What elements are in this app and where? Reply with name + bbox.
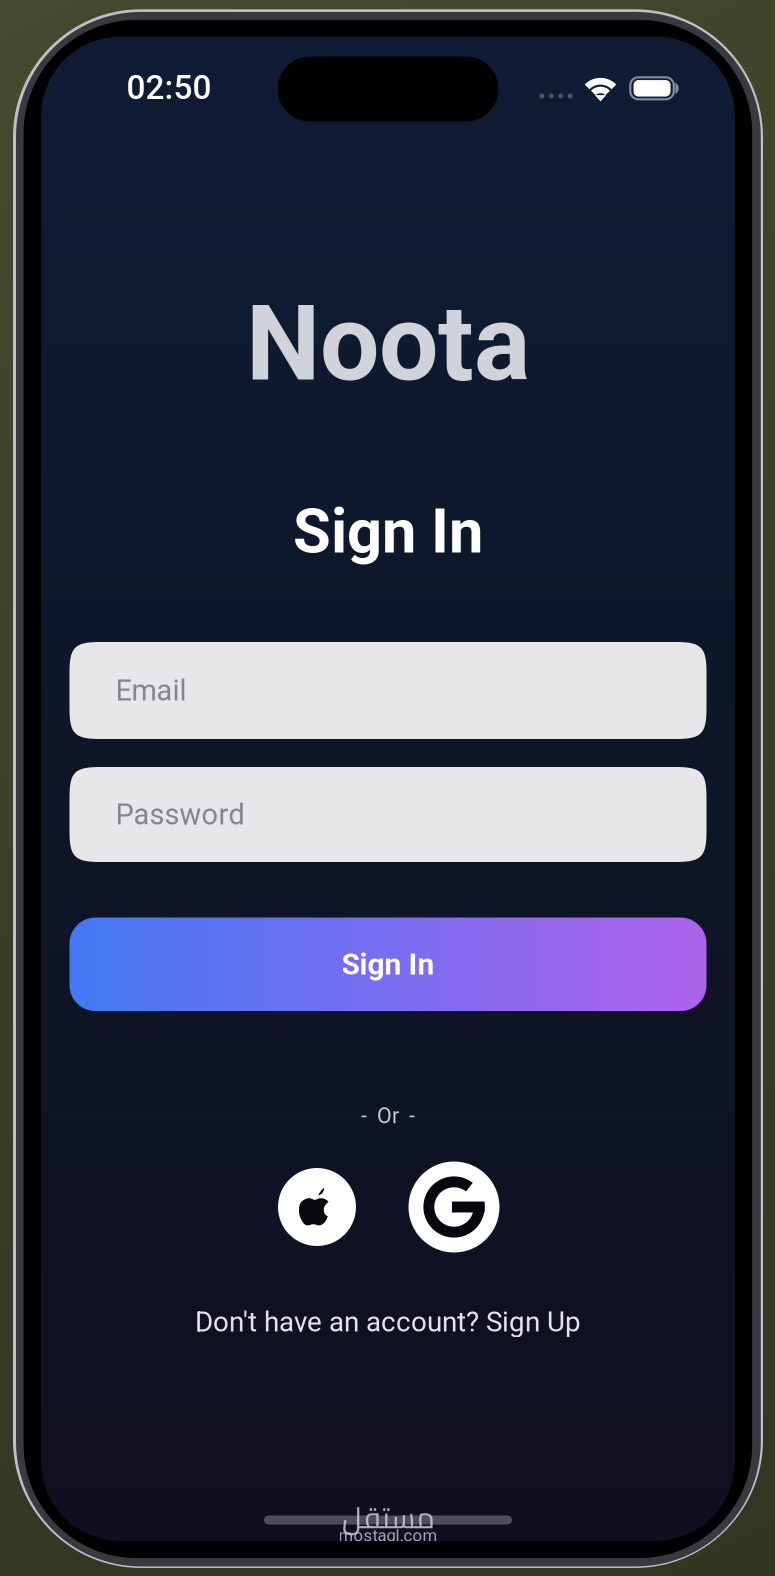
staticText: 02:50 xyxy=(126,68,211,107)
staticText: - Or - xyxy=(361,1103,415,1128)
staticText: مستقل xyxy=(341,1490,434,1545)
staticText: mostaql.com xyxy=(338,1526,437,1545)
button[interactable]: Continue with Apple xyxy=(278,1168,356,1246)
staticText: Don't have an account? Sign Up xyxy=(195,1306,581,1338)
button[interactable]: Email xyxy=(69,642,706,739)
button[interactable]: Don't have an account? Sign Up xyxy=(195,1306,581,1338)
button[interactable]: Password xyxy=(69,767,706,862)
staticText: Noota xyxy=(246,282,530,405)
staticText: Sign In xyxy=(293,496,483,567)
button[interactable]: Continue with Google xyxy=(408,1161,499,1252)
staticText: Sign In xyxy=(341,947,434,982)
staticText: Email xyxy=(115,673,186,707)
button[interactable]: Sign In xyxy=(69,917,706,1011)
staticText: Password xyxy=(115,797,244,831)
